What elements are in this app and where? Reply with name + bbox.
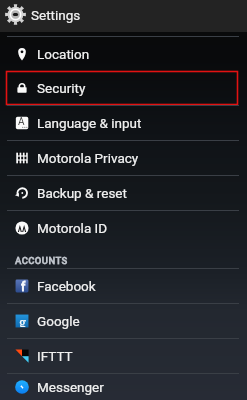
button[interactable]: Security	[0, 71, 247, 105]
staticText: Backup & reset	[37, 185, 127, 201]
staticText: Facebook	[37, 278, 96, 294]
button[interactable]: Backup & reset	[0, 176, 247, 210]
button[interactable]: Motorola ID	[0, 211, 247, 245]
button[interactable]: Messenger	[0, 374, 247, 400]
button[interactable]: Settings	[0, 0, 247, 32]
button[interactable]: A	[0, 106, 247, 140]
button[interactable]: Location	[0, 37, 247, 71]
button[interactable]: IFTTT	[0, 339, 247, 373]
button[interactable]: f	[0, 269, 247, 303]
staticText: f	[21, 280, 26, 294]
button[interactable]: g	[0, 304, 247, 338]
staticText: Messenger	[37, 379, 104, 395]
staticText: Security	[37, 80, 86, 96]
staticText: ACCOUNTS	[15, 255, 68, 266]
staticText: Location	[37, 46, 90, 62]
staticText: Settings	[31, 7, 81, 23]
staticText: Motorola Privacy	[37, 150, 139, 166]
staticText: Google	[37, 313, 80, 329]
staticText: A	[18, 116, 25, 128]
staticText: Motorola ID	[37, 220, 108, 236]
other: Settings	[5, 4, 26, 25]
staticText: IFTTT	[37, 348, 73, 364]
staticText: g	[19, 313, 26, 327]
button[interactable]: Motorola Privacy	[0, 141, 247, 175]
staticText: Language & input	[37, 115, 142, 131]
